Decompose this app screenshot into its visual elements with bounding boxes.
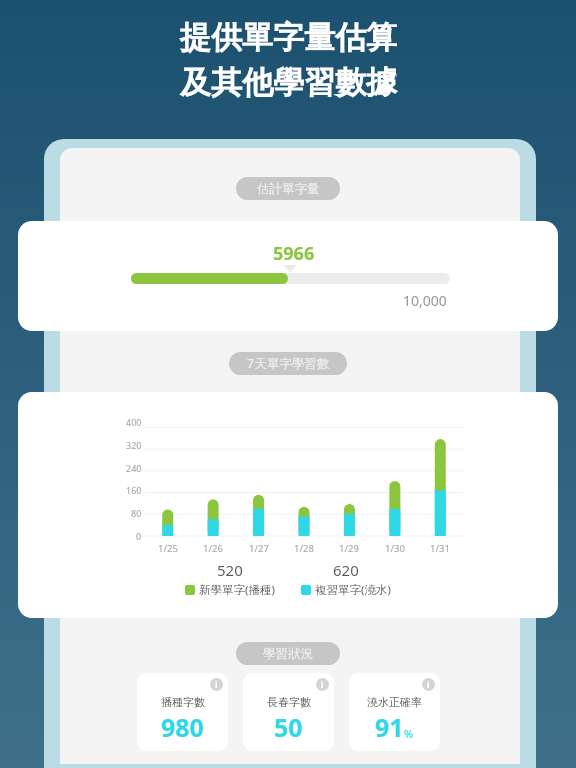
staticText: 長春字數	[267, 695, 311, 709]
staticText: 50	[274, 710, 303, 744]
staticText: 91	[375, 710, 404, 744]
staticText: 澆水正確率	[367, 695, 422, 709]
staticText: i	[215, 679, 218, 691]
staticText: 7天單字學習數	[247, 355, 330, 372]
staticText: 620	[333, 560, 359, 580]
button[interactable]: 估計單字量	[236, 177, 340, 200]
staticText: 及其他學習數據	[180, 63, 397, 102]
button[interactable]: Info about 播種字數	[210, 678, 223, 691]
staticText: 新學單字(播種)	[199, 582, 275, 598]
staticText: 320	[126, 439, 142, 451]
staticText: 1/31	[430, 542, 450, 555]
staticText: 400	[126, 416, 142, 428]
staticText: i	[427, 679, 430, 691]
staticText: i	[321, 679, 324, 691]
button[interactable]: Info about 澆水正確率	[422, 678, 435, 691]
staticText: 10,000	[403, 291, 447, 310]
staticText: 1/27	[249, 542, 269, 555]
staticText: 80	[131, 507, 142, 519]
button[interactable]: 學習狀況	[236, 642, 340, 665]
button[interactable]: Info about 播種字數	[137, 673, 228, 751]
staticText: 160	[126, 484, 142, 496]
staticText: 0	[136, 530, 142, 542]
staticText: 學習狀況	[263, 646, 313, 662]
staticText: 播種字數	[161, 695, 205, 709]
staticText: 1/28	[294, 542, 314, 555]
staticText: 估計單字量	[257, 181, 320, 197]
staticText: 240	[126, 462, 142, 474]
button[interactable]: Info about 長春字數	[316, 678, 329, 691]
staticText: 1/30	[385, 542, 405, 555]
button[interactable]: 5966	[18, 221, 558, 331]
staticText: 980	[161, 710, 204, 744]
staticText: 提供單字量估算	[180, 18, 397, 57]
button[interactable]: 7天單字學習數	[229, 352, 347, 375]
button[interactable]: 520	[185, 560, 275, 598]
button[interactable]: 620	[301, 560, 391, 598]
button[interactable]: Info about 長春字數	[243, 673, 334, 751]
staticText: 1/29	[339, 542, 359, 555]
staticText: 1/25	[158, 542, 178, 555]
staticText: 1/26	[203, 542, 223, 555]
staticText: 5966	[273, 241, 315, 266]
staticText: %	[404, 726, 414, 741]
staticText: 520	[217, 560, 243, 580]
staticText: 複習單字(澆水)	[315, 582, 391, 598]
button[interactable]: Info about 澆水正確率	[349, 673, 440, 751]
